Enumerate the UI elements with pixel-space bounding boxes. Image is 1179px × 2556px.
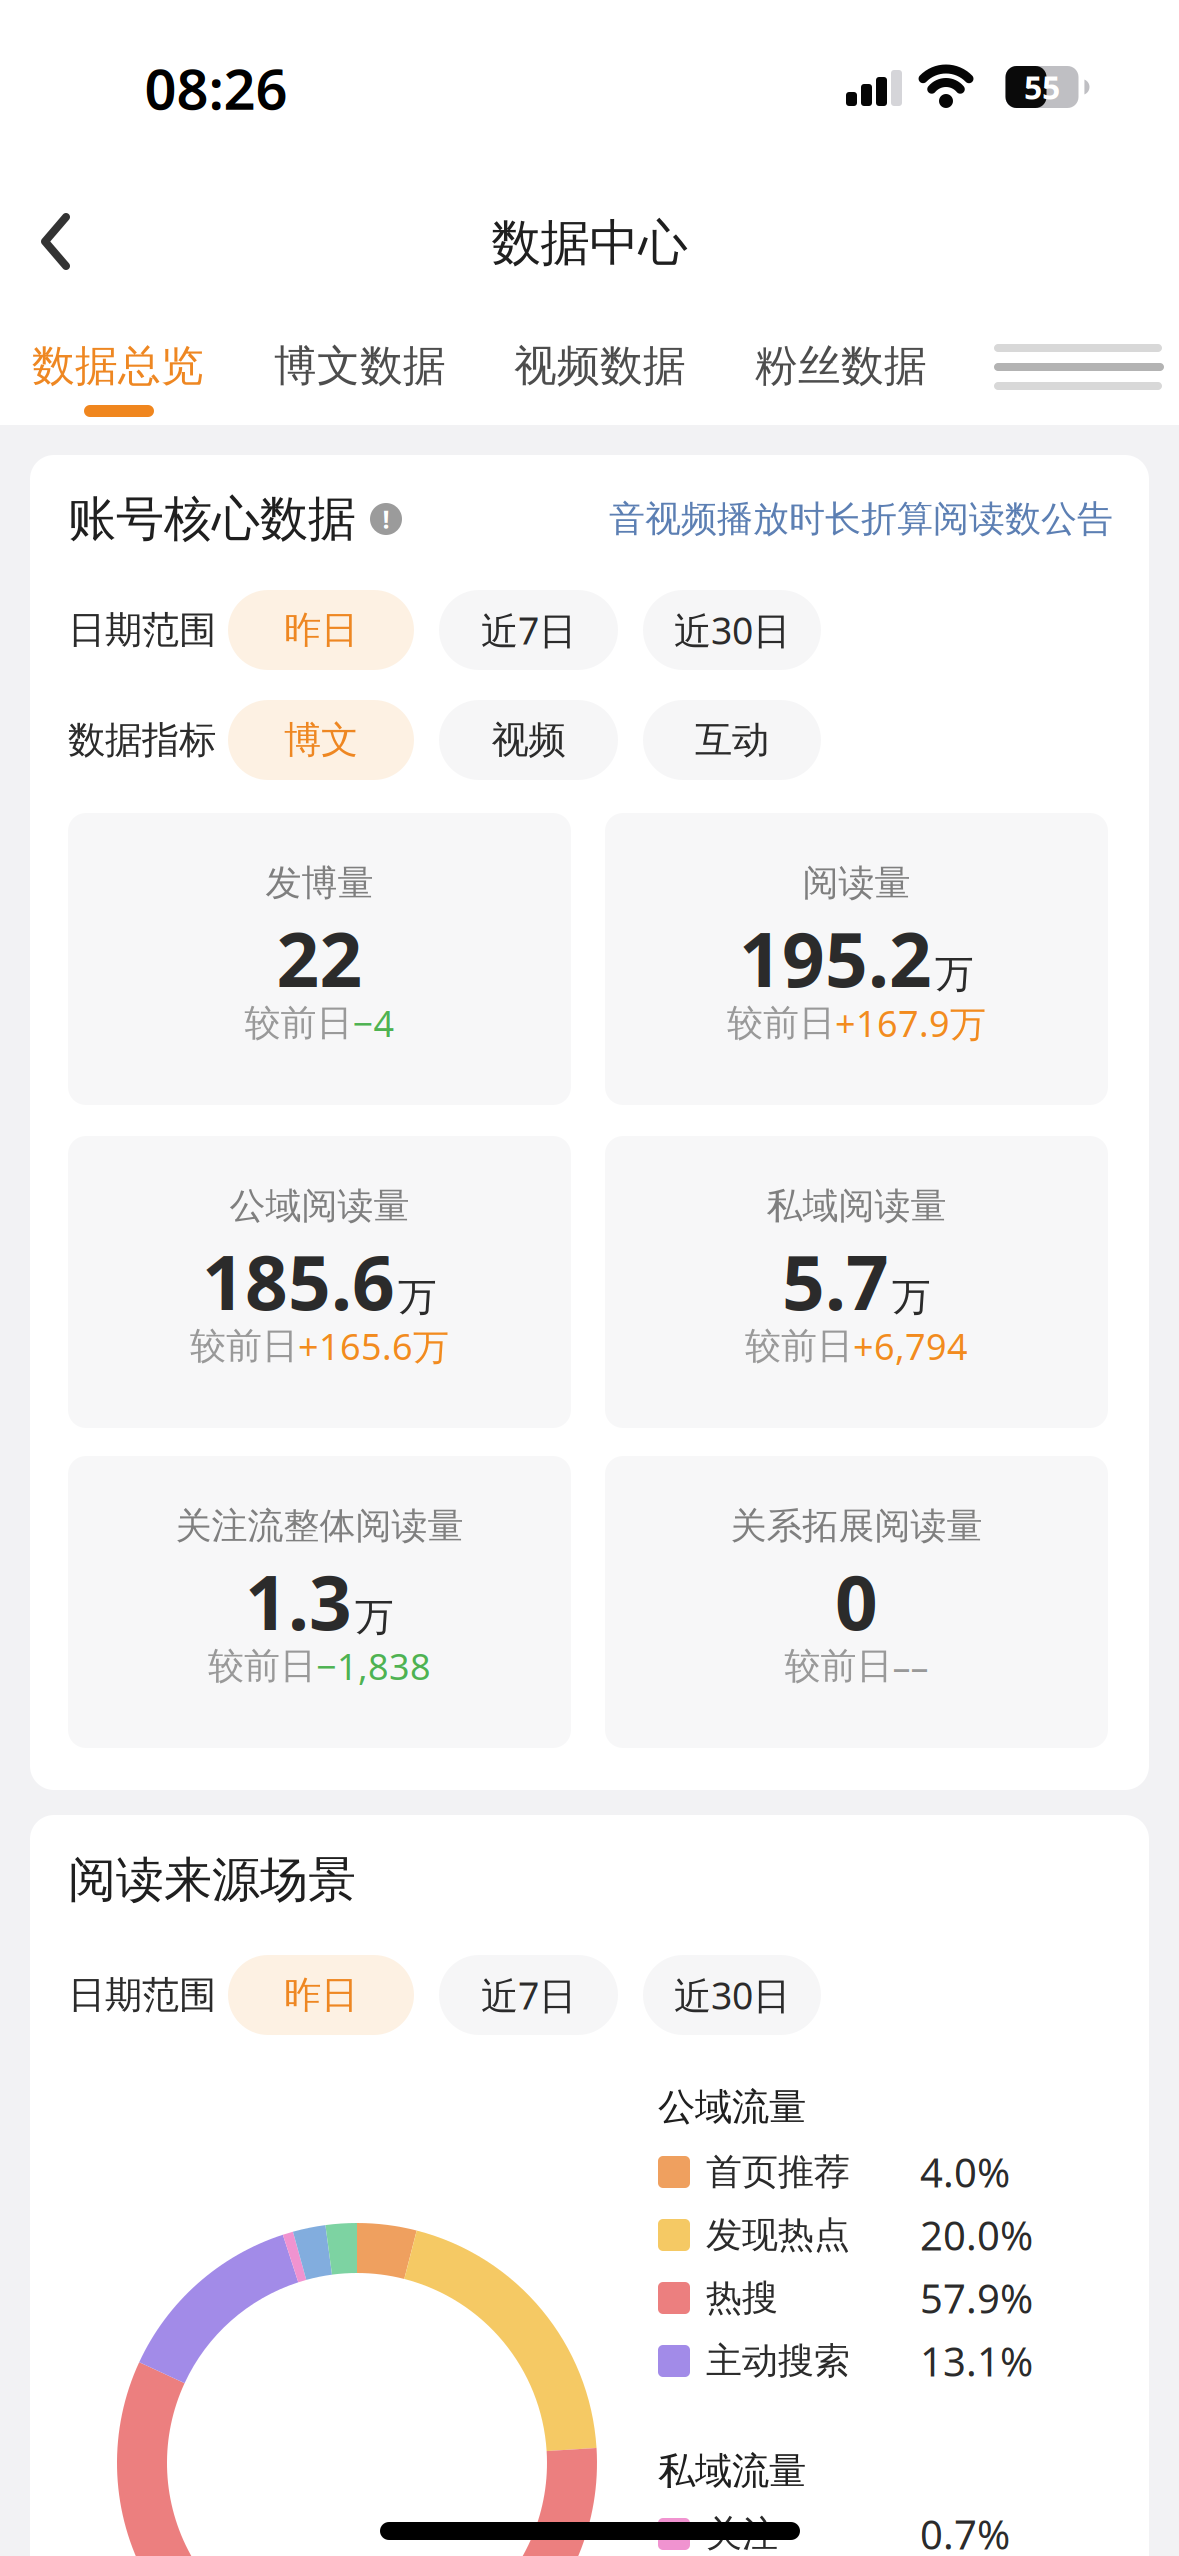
- staticText: 较前日: [244, 1001, 352, 1045]
- staticText: ––: [892, 1642, 928, 1690]
- button[interactable]: 昨日: [228, 1955, 414, 2035]
- button[interactable]: 视频数据: [514, 338, 686, 394]
- staticText: 音视频播放时长折算阅读数公告: [609, 497, 1113, 541]
- staticText: 发博量: [265, 861, 373, 905]
- staticText: 0.7%: [920, 2507, 1010, 2556]
- staticText: 私域流量: [658, 2448, 806, 2494]
- staticText: 数据指标: [68, 717, 216, 763]
- button[interactable]: 互动: [643, 700, 821, 780]
- button[interactable]: 音视频播放时长折算阅读数公告: [609, 497, 1113, 541]
- staticText: 195.2: [739, 908, 932, 1008]
- staticText: 日期范围: [68, 1972, 216, 2018]
- staticText: 互动: [695, 717, 769, 763]
- staticText: 主动搜索: [706, 2339, 850, 2383]
- staticText: 阅读来源场景: [68, 1850, 356, 1909]
- staticText: 关系拓展阅读量: [730, 1504, 982, 1548]
- staticText: 私域阅读量: [766, 1184, 946, 1228]
- staticText: 较前日: [208, 1644, 316, 1688]
- staticText: 关注流整体阅读量: [175, 1504, 463, 1548]
- staticText: 0: [835, 1551, 878, 1651]
- staticText: 近30日: [674, 605, 790, 655]
- staticText: 较前日: [190, 1324, 298, 1368]
- staticText: 22: [276, 908, 362, 1008]
- staticText: +6,794: [853, 1322, 968, 1370]
- button[interactable]: 近7日: [439, 1955, 618, 2035]
- staticText: 万: [398, 1273, 437, 1321]
- staticText: 数据总览: [32, 340, 204, 392]
- staticText: 昨日: [284, 1972, 358, 2018]
- staticText: 公域阅读量: [229, 1184, 409, 1228]
- staticText: 阅读量: [802, 861, 910, 905]
- staticText: 公域流量: [658, 2084, 806, 2130]
- staticText: 发现热点: [706, 2213, 850, 2257]
- staticText: 较前日: [727, 1001, 835, 1045]
- staticText: 1.3: [245, 1551, 352, 1651]
- staticText: 昨日: [284, 607, 358, 653]
- staticText: !: [382, 502, 389, 536]
- staticText: 57.9%: [920, 2271, 1033, 2324]
- staticText: 万: [935, 950, 974, 998]
- button[interactable]: 近7日: [439, 590, 618, 670]
- staticText: +167.9万: [835, 999, 986, 1047]
- staticText: 粉丝数据: [755, 340, 927, 392]
- button[interactable]: 数据说明: [356, 503, 402, 535]
- staticText: 185.6: [202, 1231, 395, 1331]
- staticText: 视频: [491, 717, 565, 763]
- staticText: 5.7: [782, 1231, 889, 1331]
- staticText: 博文: [284, 717, 358, 763]
- staticText: 近7日: [481, 605, 576, 655]
- button[interactable]: 视频: [439, 700, 618, 780]
- staticText: 万: [355, 1593, 394, 1641]
- staticText: −4: [352, 999, 394, 1047]
- button[interactable]: 数据总览: [32, 338, 204, 394]
- staticText: 关注: [706, 2512, 778, 2556]
- staticText: 热搜: [706, 2276, 778, 2320]
- button[interactable]: 粉丝数据: [755, 338, 927, 394]
- staticText: 日期范围: [68, 607, 216, 653]
- staticText: 55: [1024, 66, 1060, 108]
- staticText: 账号核心数据: [68, 489, 356, 548]
- button[interactable]: 近30日: [643, 590, 821, 670]
- staticText: −1,838: [316, 1642, 431, 1690]
- staticText: 08:26: [144, 51, 287, 125]
- button[interactable]: 返回: [41, 213, 70, 270]
- staticText: 万: [892, 1273, 931, 1321]
- staticText: 20.0%: [920, 2208, 1033, 2261]
- staticText: 近30日: [674, 1970, 790, 2020]
- staticText: 视频数据: [514, 340, 686, 392]
- staticText: 首页推荐: [706, 2150, 850, 2194]
- button[interactable]: 近30日: [643, 1955, 821, 2035]
- staticText: 13.1%: [920, 2334, 1033, 2387]
- staticText: 博文数据: [274, 340, 446, 392]
- button[interactable]: 博文数据: [274, 338, 446, 394]
- staticText: +165.6万: [298, 1322, 449, 1370]
- staticText: 4.0%: [920, 2145, 1010, 2198]
- staticText: 较前日: [745, 1324, 853, 1368]
- staticText: 较前日: [784, 1644, 892, 1688]
- staticText: 数据中心: [491, 213, 687, 273]
- button[interactable]: 博文: [228, 700, 414, 780]
- button[interactable]: 昨日: [228, 590, 414, 670]
- staticText: 近7日: [481, 1970, 576, 2020]
